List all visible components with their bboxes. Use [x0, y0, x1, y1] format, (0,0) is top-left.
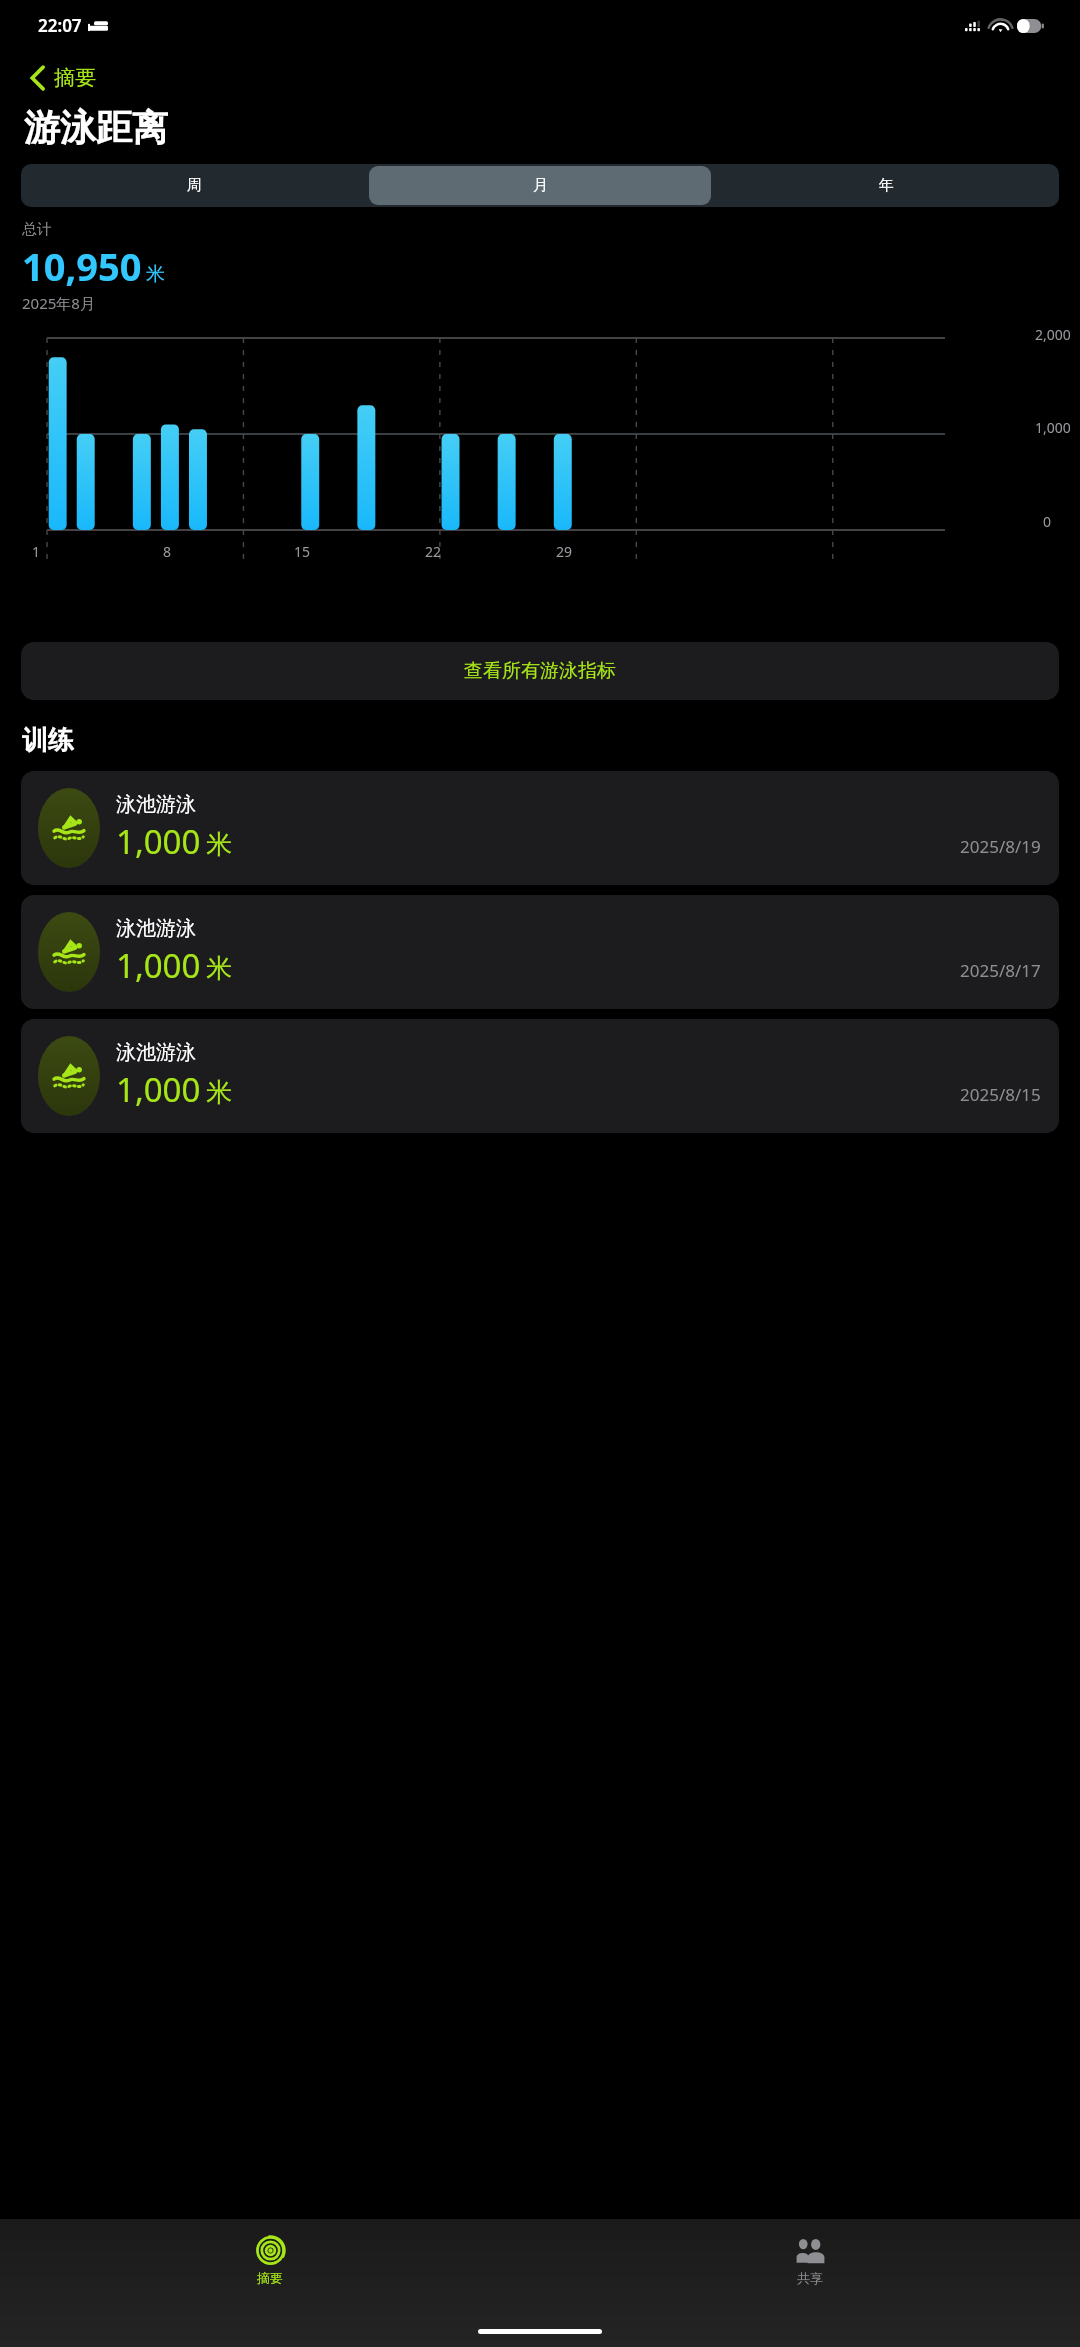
button[interactable]: 周 [23, 166, 365, 205]
button[interactable]: 年 [715, 166, 1057, 205]
staticText: 8 [163, 542, 172, 561]
staticText: 2025年8月 [22, 293, 95, 313]
staticText: 总计 [22, 220, 52, 239]
button[interactable]: 摘要 [24, 61, 102, 95]
staticText: 0 [1043, 512, 1052, 531]
staticText: 米 [206, 952, 232, 985]
staticText: 1,000 [116, 943, 201, 988]
staticText: 米 [206, 828, 232, 861]
staticText: 2025/8/19 [960, 835, 1041, 858]
staticText: 共享 [797, 2270, 823, 2286]
staticText: 1 [32, 542, 41, 561]
staticText: 周 [187, 176, 202, 195]
staticText: 摘要 [257, 2270, 283, 2286]
button[interactable]: 摘要 [0, 2219, 540, 2303]
staticText: 2025/8/17 [960, 959, 1041, 982]
staticText: 查看所有游泳指标 [464, 659, 616, 683]
other: 摘要 [256, 2236, 285, 2265]
staticText: 15 [294, 542, 311, 561]
staticText: 29 [556, 542, 573, 561]
staticText: 摘要 [54, 65, 96, 91]
staticText: 米 [206, 1076, 232, 1109]
staticText: 米 [146, 262, 165, 286]
staticText: 训练 [22, 724, 74, 757]
staticText: 泳池游泳 [116, 1040, 196, 1065]
staticText: 22:07 [38, 14, 82, 37]
staticText: 22 [425, 542, 442, 561]
other: 共享 [796, 2236, 825, 2265]
button[interactable]: 泳池游泳 [21, 1019, 1059, 1133]
staticText: 1,000 [116, 819, 201, 864]
staticText: 泳池游泳 [116, 916, 196, 941]
staticText: 1,000 [1035, 418, 1071, 437]
button[interactable]: 月 [369, 166, 711, 205]
staticText: 游泳距离 [24, 105, 168, 150]
button[interactable]: 泳池游泳 [21, 895, 1059, 1009]
button[interactable]: 泳池游泳 [21, 771, 1059, 885]
staticText: 泳池游泳 [116, 792, 196, 817]
button[interactable]: 共享 [540, 2219, 1080, 2303]
staticText: 10,950 [22, 240, 142, 292]
staticText: 2025/8/15 [960, 1083, 1041, 1106]
staticText: 1,000 [116, 1067, 201, 1112]
staticText: 年 [879, 176, 894, 195]
staticText: 月 [533, 176, 548, 195]
button[interactable]: 查看所有游泳指标 [21, 642, 1059, 700]
staticText: 2,000 [1035, 325, 1071, 344]
